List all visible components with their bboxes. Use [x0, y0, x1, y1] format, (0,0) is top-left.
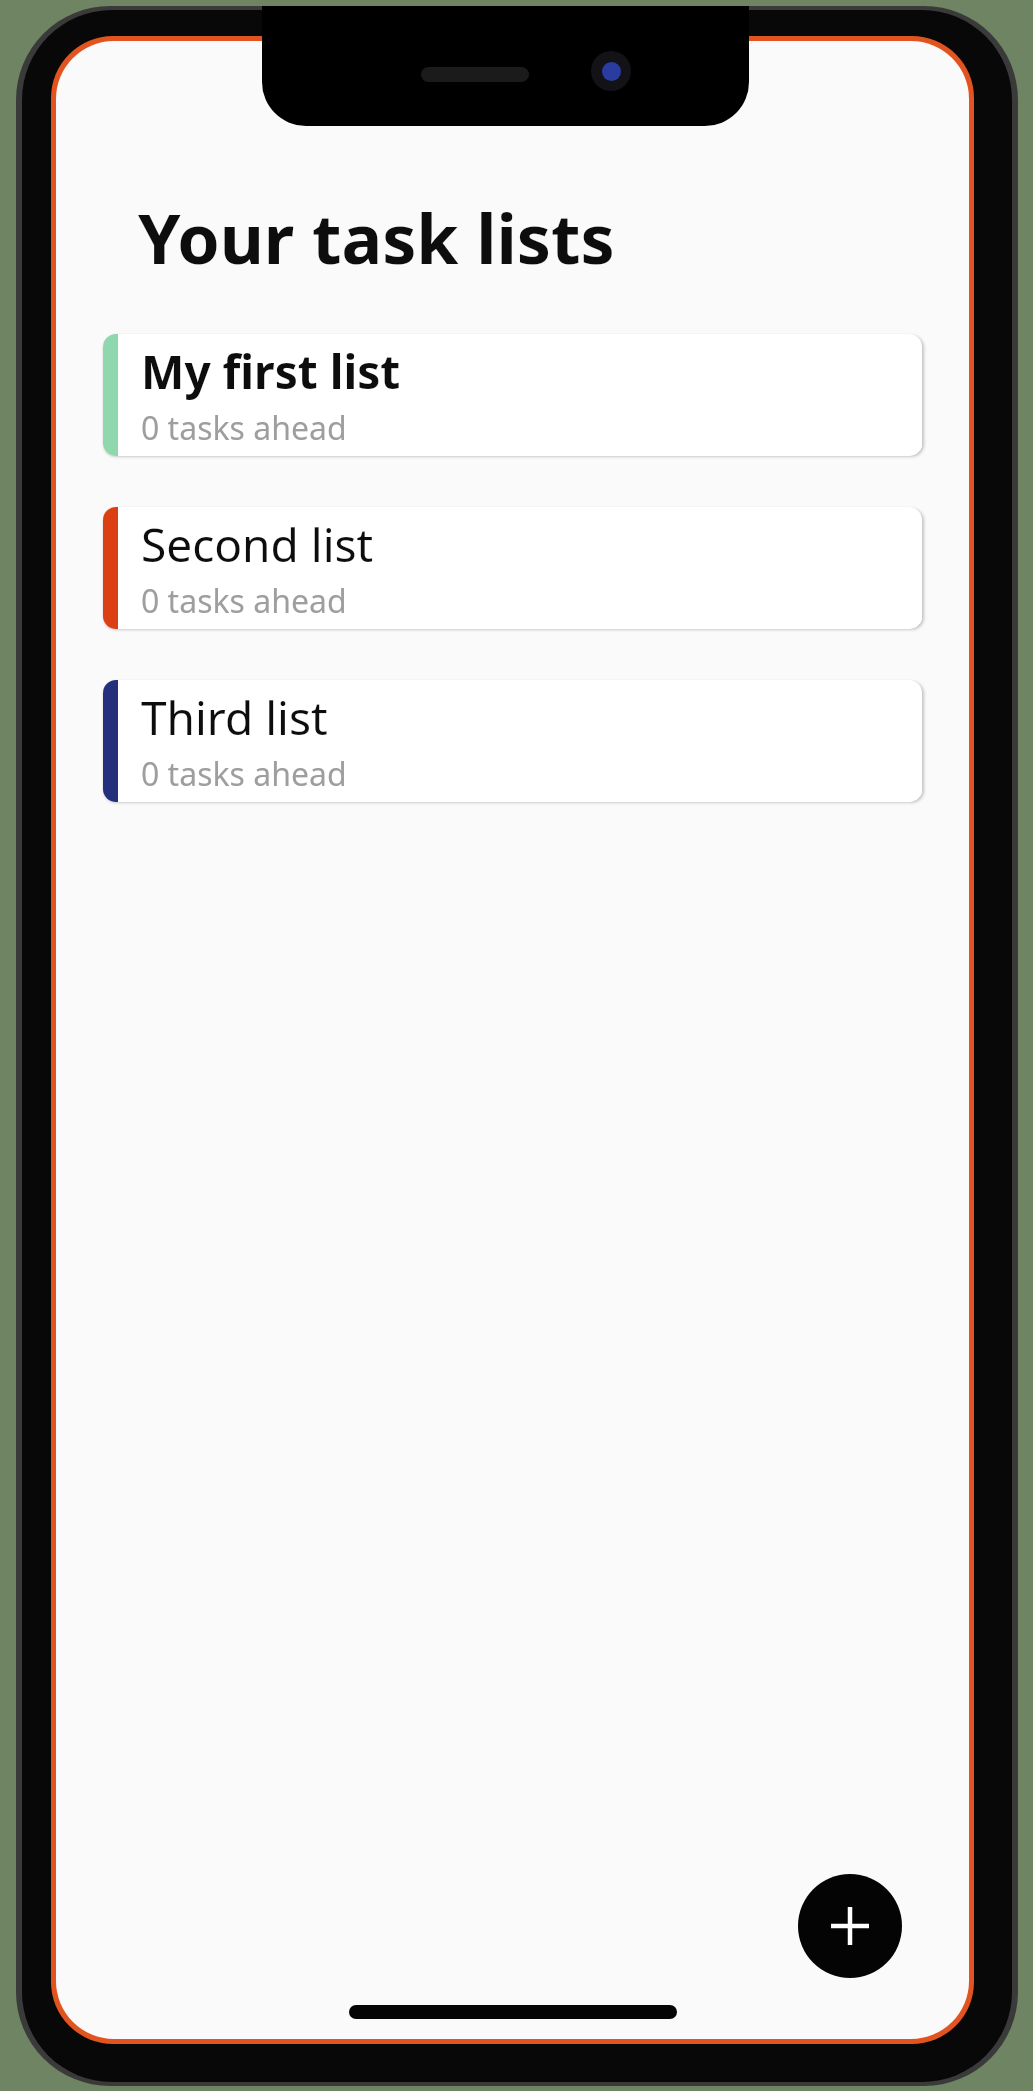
button[interactable]: Second list [103, 507, 922, 629]
staticText: My first list [141, 340, 401, 403]
staticText: 0 tasks ahead [141, 579, 347, 623]
staticText: Second list [141, 513, 374, 576]
button[interactable]: Add task list [798, 1874, 902, 1978]
staticText: 0 tasks ahead [141, 406, 347, 450]
staticText: Third list [141, 686, 328, 749]
button[interactable]: Third list [103, 680, 922, 802]
staticText: 0 tasks ahead [141, 752, 347, 796]
button[interactable]: My first list [103, 334, 922, 456]
staticText: Your task lists [138, 191, 615, 284]
